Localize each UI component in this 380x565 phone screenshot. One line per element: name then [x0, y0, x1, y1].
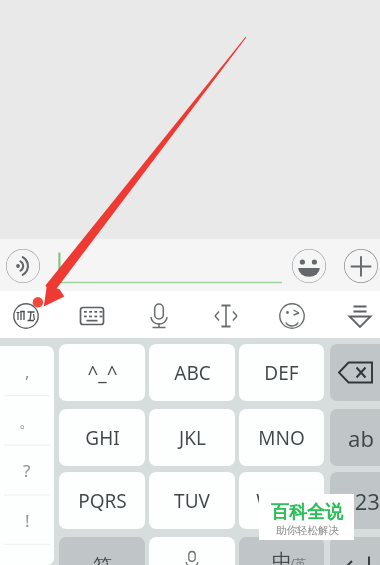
button[interactable]: Hide keyboard — [343, 299, 377, 333]
staticText: DEF — [264, 360, 299, 386]
button[interactable]: MNO — [239, 409, 324, 466]
staticText: ! — [25, 509, 30, 532]
button[interactable]: Enter — [330, 537, 380, 565]
button[interactable]: TUV — [149, 472, 235, 529]
staticText: 符 — [93, 554, 112, 565]
staticText: ABC — [174, 360, 211, 386]
button[interactable]: 中 — [239, 537, 324, 565]
button[interactable]: ? — [0, 445, 54, 495]
button[interactable]: Keyboard layout — [75, 299, 109, 333]
button[interactable]: Emoji — [292, 249, 326, 283]
staticText: GHI — [85, 425, 120, 451]
button[interactable]: 123 — [330, 472, 380, 529]
staticText: 中 — [272, 549, 292, 565]
button[interactable]: , — [0, 346, 54, 396]
button[interactable]: 符 — [59, 537, 145, 565]
button[interactable]: Space — [149, 537, 235, 565]
button[interactable]: GHI — [59, 409, 145, 466]
staticText: /英 — [290, 555, 307, 565]
staticText: PQRS — [78, 488, 127, 514]
button[interactable]: JKL — [149, 409, 235, 466]
button[interactable]: ABC — [149, 344, 235, 401]
button[interactable]: ab — [330, 409, 380, 466]
staticText: 百科全说 — [271, 501, 343, 524]
button[interactable]: DEF — [239, 344, 324, 401]
staticText: ab — [348, 423, 374, 453]
staticText: 助你轻松解决 — [276, 524, 339, 537]
staticText: TUV — [174, 488, 210, 514]
staticText: MNO — [258, 425, 305, 451]
button[interactable]: PQRS — [59, 472, 145, 529]
button[interactable]: Input method — [9, 299, 43, 333]
button[interactable]: Backspace — [330, 344, 380, 401]
staticText: 。 — [19, 411, 36, 432]
button[interactable]: Voice input — [6, 249, 40, 283]
button[interactable]: Emoticons — [275, 299, 309, 333]
staticText: ? — [23, 459, 31, 482]
button[interactable]: 。 — [0, 396, 54, 446]
button[interactable]: WXYZ — [239, 472, 324, 529]
staticText: JKL — [179, 425, 206, 451]
staticText: WXYZ — [256, 488, 307, 514]
button[interactable]: Add attachment — [344, 249, 378, 283]
button[interactable]: Voice input — [142, 299, 176, 333]
button[interactable]: ! — [0, 495, 54, 545]
button[interactable]: ^_^ — [59, 344, 145, 401]
staticText: 123 — [342, 486, 380, 516]
button[interactable]: Move cursor — [209, 299, 243, 333]
staticText: ^_^ — [87, 360, 118, 386]
staticText: , — [25, 360, 30, 383]
